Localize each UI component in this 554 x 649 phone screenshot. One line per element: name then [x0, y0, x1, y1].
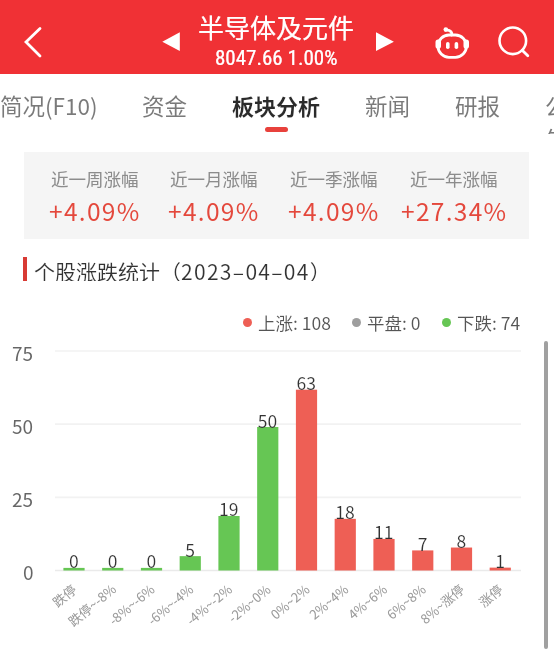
staticText: 下跌: 74 [457, 310, 521, 334]
button[interactable]: 上涨: 108 [243, 310, 331, 334]
button[interactable]: Previous sector [160, 30, 182, 52]
button[interactable]: Search [492, 20, 534, 62]
button[interactable]: Back [12, 20, 54, 62]
staticText: 资金 [142, 89, 188, 122]
staticText: +27.34% [401, 193, 508, 228]
button[interactable]: 新闻 [365, 74, 411, 134]
button[interactable]: 研报 [455, 74, 501, 134]
staticText: 上涨: 108 [258, 310, 331, 334]
staticText: +4.09% [288, 193, 380, 228]
staticText: 简况(F10) [0, 89, 98, 122]
button[interactable]: 近一季涨幅 [274, 152, 394, 228]
staticText: +4.09% [168, 193, 260, 228]
button[interactable]: 近一年涨幅 [394, 152, 514, 228]
staticText: 个股涨跌统计（2023–04–04） [34, 256, 331, 281]
staticText: +4.09% [49, 193, 141, 228]
staticText: 8047.66 1.00% [215, 46, 338, 71]
staticText: 近一月涨幅 [170, 166, 258, 191]
staticText: 研报 [455, 89, 501, 122]
button[interactable]: Next sector [374, 30, 396, 52]
staticText: 近一季涨幅 [290, 166, 378, 191]
button[interactable]: 近一月涨幅 [154, 152, 274, 228]
button[interactable]: AI assistant [430, 20, 474, 64]
button[interactable]: 下跌: 74 [442, 310, 521, 334]
staticText: 近一周涨幅 [51, 166, 139, 191]
staticText: 近一年涨幅 [410, 166, 498, 191]
staticText: 公告 [545, 89, 554, 134]
staticText: 半导体及元件 [198, 8, 355, 46]
button[interactable]: 平盘: 0 [352, 310, 421, 334]
button[interactable]: 近一周涨幅 [35, 152, 154, 228]
button[interactable]: 板块分析 [232, 74, 321, 134]
staticText: 新闻 [365, 89, 411, 122]
staticText: 板块分析 [232, 89, 321, 121]
button[interactable]: 公告 [545, 74, 554, 134]
staticText: 平盘: 0 [367, 310, 421, 334]
button[interactable]: 资金 [142, 74, 188, 134]
button[interactable]: 简况(F10) [0, 74, 98, 134]
